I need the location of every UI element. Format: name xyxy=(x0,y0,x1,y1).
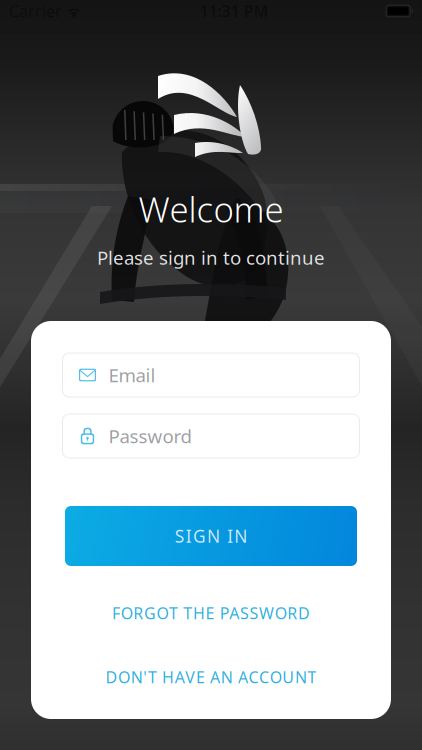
staticText: Email xyxy=(108,363,155,387)
staticText: SIGN IN xyxy=(175,524,247,547)
staticText: DON'T HAVE AN ACCOUNT xyxy=(105,666,316,688)
button[interactable]: FORGOT THE PASSWORD xyxy=(31,598,391,628)
staticText: 11:31 PM xyxy=(200,0,269,22)
staticText: Welcome xyxy=(138,186,283,232)
staticText: Password xyxy=(108,424,191,448)
staticText: Please sign in to continue xyxy=(97,245,325,270)
staticText: FORGOT THE PASSWORD xyxy=(112,602,310,624)
button[interactable]: SIGN IN xyxy=(65,506,357,566)
button[interactable]: DON'T HAVE AN ACCOUNT xyxy=(31,662,391,692)
